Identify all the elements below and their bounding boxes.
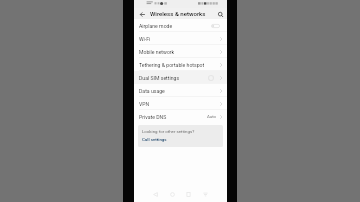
button[interactable]: Search	[216, 10, 224, 18]
staticText: Wireless & networks	[150, 10, 206, 17]
button[interactable]: Mobile network	[134, 45, 227, 58]
staticText: Wi-Fi	[139, 36, 151, 42]
staticText: Mobile network	[139, 49, 175, 55]
button[interactable]: Wi-Fi	[134, 32, 227, 45]
staticText: Tethering & portable hotspot	[139, 62, 205, 68]
button[interactable]: Back	[151, 190, 160, 199]
button[interactable]: Dual SIM settings	[134, 71, 227, 84]
button[interactable]: Private DNS	[134, 110, 227, 123]
button[interactable]: Back	[138, 10, 146, 18]
staticText: Looking for other settings?	[142, 129, 195, 134]
staticText: Auto	[207, 114, 216, 119]
staticText: Private DNS	[139, 114, 167, 120]
button[interactable]: VPN	[134, 97, 227, 110]
button[interactable]: Data usage	[134, 84, 227, 97]
staticText: Airplane mode	[139, 23, 173, 29]
staticText: VPN	[139, 101, 150, 107]
button[interactable]: Call settings	[142, 137, 167, 142]
button[interactable]: Tethering & portable hotspot	[134, 58, 227, 71]
staticText: Dual SIM settings	[139, 75, 180, 81]
button[interactable]: Hide keyboard	[201, 190, 210, 199]
staticText: Data usage	[139, 88, 165, 94]
button[interactable]: Recents	[184, 190, 193, 199]
button[interactable]: Home	[168, 190, 177, 199]
button[interactable]: Airplane mode	[134, 19, 227, 32]
